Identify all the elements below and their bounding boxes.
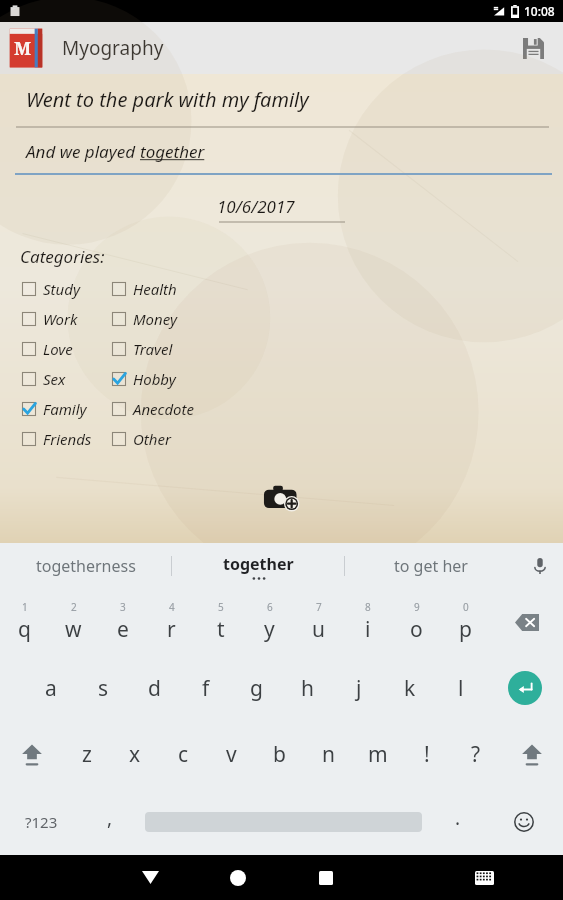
button[interactable]: Recent apps — [282, 855, 370, 900]
button[interactable]: z — [63, 721, 111, 788]
button[interactable]: 10/6/2017 — [217, 195, 347, 223]
staticText: w — [65, 615, 82, 644]
button[interactable]: Anecdote — [112, 395, 222, 423]
button[interactable]: Went to the park with my family — [0, 86, 563, 128]
button[interactable]: h — [282, 655, 333, 721]
button[interactable]: Money — [112, 305, 222, 333]
staticText: ! — [424, 740, 430, 769]
button[interactable]: j — [333, 655, 384, 721]
button[interactable]: Work — [22, 305, 108, 333]
staticText: Hobby — [133, 369, 176, 389]
button[interactable]: Love — [22, 335, 108, 363]
button[interactable]: ? — [451, 721, 500, 788]
button[interactable]: l — [435, 655, 486, 721]
staticText: k — [404, 674, 416, 703]
button[interactable]: s — [77, 655, 129, 721]
button[interactable]: Other — [112, 425, 222, 453]
staticText: i — [365, 615, 371, 644]
staticText: r — [167, 615, 176, 644]
button[interactable]: 5 — [196, 589, 245, 655]
button[interactable]: 3 — [98, 589, 147, 655]
staticText: f — [202, 674, 210, 703]
button[interactable]: . — [431, 788, 484, 855]
staticText: Study — [43, 279, 80, 299]
button[interactable]: Shift right — [500, 721, 563, 788]
button[interactable]: 2 — [49, 589, 98, 655]
button[interactable]: 4 — [147, 589, 196, 655]
staticText: 10:08 — [524, 3, 555, 19]
staticText: v — [226, 740, 237, 769]
button[interactable]: Voice input — [517, 543, 563, 589]
staticText: 8 — [365, 600, 371, 614]
staticText: together — [223, 553, 294, 575]
button[interactable]: Hobby — [112, 365, 222, 393]
button[interactable]: x — [111, 721, 159, 788]
button[interactable]: Shift — [0, 721, 63, 788]
button[interactable]: togetherness — [0, 543, 171, 589]
button[interactable]: And we played — [0, 140, 563, 175]
staticText: Myography — [62, 35, 164, 61]
button[interactable]: v — [207, 721, 255, 788]
button[interactable]: n — [304, 721, 353, 788]
button[interactable]: Home — [194, 855, 282, 900]
staticText: , — [107, 805, 113, 831]
staticText: 0 — [463, 600, 469, 614]
staticText: e — [117, 615, 129, 644]
staticText: 9 — [414, 600, 420, 614]
staticText: Health — [133, 279, 177, 299]
button[interactable]: ! — [402, 721, 451, 788]
staticText: t — [217, 615, 225, 644]
button[interactable]: together — [172, 543, 344, 589]
button[interactable]: 0 — [441, 589, 490, 655]
button[interactable]: m — [353, 721, 402, 788]
button[interactable]: Switch keyboard — [440, 855, 528, 900]
button[interactable]: 6 — [245, 589, 294, 655]
button[interactable]: Emoji — [484, 788, 563, 855]
staticText: 1 — [22, 600, 28, 614]
staticText: u — [312, 615, 325, 644]
button[interactable]: c — [159, 721, 207, 788]
button[interactable]: , — [83, 788, 136, 855]
button[interactable]: ?123 — [0, 788, 83, 855]
staticText: z — [82, 740, 92, 769]
button[interactable]: 8 — [343, 589, 392, 655]
button[interactable]: Myography app icon — [8, 26, 44, 70]
button[interactable]: Family — [22, 395, 108, 423]
button[interactable]: f — [180, 655, 231, 721]
button[interactable]: Enter — [486, 655, 563, 721]
button[interactable]: Backspace — [490, 589, 563, 655]
staticText: Travel — [133, 339, 173, 359]
button[interactable]: Health — [112, 275, 222, 303]
button[interactable]: Add photo — [256, 472, 308, 524]
staticText: h — [301, 674, 314, 703]
button[interactable]: 7 — [294, 589, 343, 655]
staticText: 3 — [120, 600, 126, 614]
staticText: m — [368, 740, 388, 769]
button[interactable]: k — [384, 655, 435, 721]
button[interactable]: b — [255, 721, 304, 788]
button[interactable]: Travel — [112, 335, 222, 363]
button[interactable]: Space — [136, 788, 431, 855]
staticText: b — [273, 740, 286, 769]
staticText: 6 — [267, 600, 273, 614]
button[interactable]: Hide keyboard — [106, 855, 194, 900]
staticText: j — [356, 674, 362, 703]
staticText: Other — [133, 429, 171, 449]
staticText: 2 — [71, 600, 77, 614]
staticText: y — [264, 615, 275, 644]
staticText: Money — [133, 309, 177, 329]
button[interactable]: Save — [509, 24, 557, 72]
button[interactable]: 9 — [392, 589, 441, 655]
staticText: to get her — [394, 555, 468, 577]
staticText: ? — [471, 740, 481, 769]
button[interactable]: Study — [22, 275, 108, 303]
button[interactable]: 1 — [0, 589, 49, 655]
button[interactable]: to get her — [345, 543, 517, 589]
button[interactable]: Sex — [22, 365, 108, 393]
button[interactable]: d — [129, 655, 180, 721]
button[interactable]: g — [231, 655, 282, 721]
button[interactable]: Friends — [22, 425, 108, 453]
button[interactable]: a — [25, 655, 77, 721]
staticText: . — [455, 805, 461, 831]
staticText: c — [178, 740, 189, 769]
